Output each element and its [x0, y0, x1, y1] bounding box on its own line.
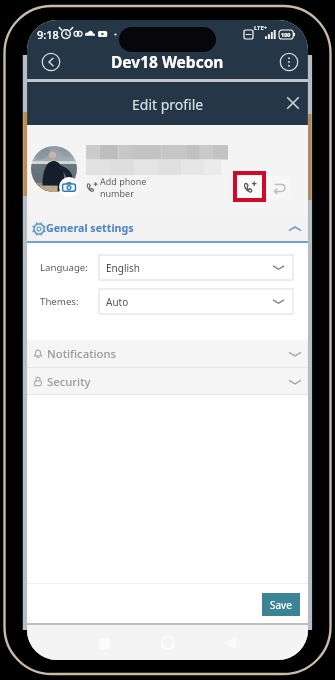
button[interactable]: Close [281, 91, 305, 115]
staticText: Edit profile [132, 95, 204, 114]
button[interactable]: Change profile photo [59, 177, 79, 197]
staticText: 9:18 [37, 27, 59, 42]
staticText: LTE+ [254, 24, 268, 32]
button[interactable]: Notifications [27, 340, 308, 367]
button[interactable]: Profile photo [31, 146, 77, 192]
staticText: Save [270, 598, 292, 612]
button[interactable]: General settings [27, 216, 308, 241]
button[interactable]: Save [262, 593, 300, 616]
staticText: Security [47, 374, 91, 389]
staticText: English [106, 261, 141, 275]
staticText: General settings [46, 221, 134, 236]
button[interactable]: Add phone number [238, 176, 261, 198]
staticText: Themes: [40, 295, 79, 308]
staticText: Notifications [47, 346, 116, 361]
staticText: Add phone number [100, 175, 147, 199]
button[interactable]: Back [40, 51, 62, 73]
staticText: Dev18 Webcon [111, 51, 224, 72]
staticText: Language: [40, 261, 88, 274]
button[interactable]: Security [27, 368, 308, 395]
staticText: 100 [281, 31, 291, 38]
button[interactable]: Undo [267, 176, 291, 198]
button[interactable]: Back [225, 637, 236, 649]
button[interactable]: Auto [99, 289, 293, 314]
staticText: Auto [106, 295, 129, 309]
button[interactable]: More options [278, 51, 300, 73]
button[interactable]: English [99, 255, 293, 280]
